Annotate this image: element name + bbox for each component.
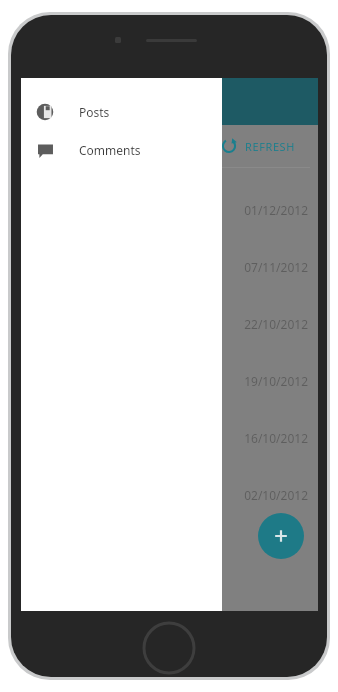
button[interactable]: Comments [21,137,222,163]
other: Refresh [221,138,237,154]
button[interactable]: Aenean rutrum enim [21,453,318,510]
button[interactable]: Lorem ipsum posuere ut, [21,168,318,225]
button[interactable]: Refresh [21,125,318,167]
button[interactable]: Curabitur sed enim nunc [21,339,318,396]
button[interactable]: Vestibulum ante ipsum [21,225,318,282]
staticText: 16/10/2012 [31,430,308,446]
staticText: Comments [79,142,141,158]
button[interactable]: Add [258,513,304,559]
staticText: REFRESH [245,139,296,154]
staticText: Posts [79,104,110,120]
button[interactable]: Nulla facilisi est possimus [21,282,318,339]
button[interactable]: Pellentesque blandi dolor [21,396,318,453]
button[interactable]: Posts [21,99,222,125]
staticText: 19/10/2012 [31,373,308,389]
staticText: 07/11/2012 [31,259,308,275]
staticText: 22/10/2012 [31,316,308,332]
staticText: 01/12/2012 [31,202,308,218]
staticText: 02/10/2012 [31,487,308,503]
